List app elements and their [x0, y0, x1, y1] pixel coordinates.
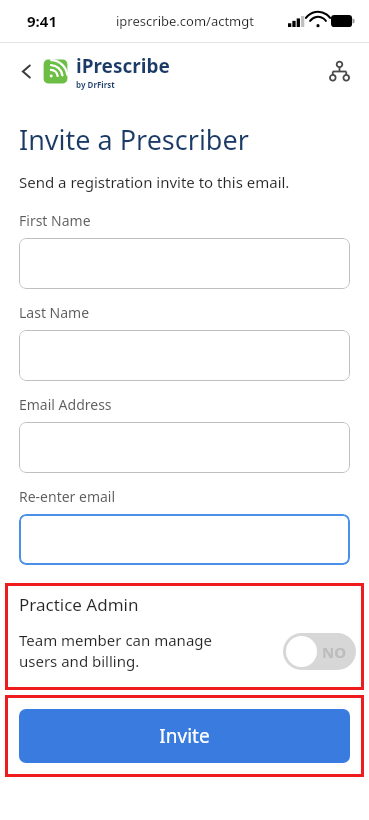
staticText: NO — [322, 642, 347, 662]
staticText: Invite — [159, 723, 210, 749]
staticText: Practice Admin — [19, 593, 139, 616]
staticText: by DrFirst — [76, 79, 115, 90]
button[interactable]: Practice admin toggle, off — [283, 633, 356, 670]
button[interactable] — [19, 514, 350, 565]
staticText: Last Name — [19, 303, 90, 322]
button[interactable]: Back — [8, 53, 44, 89]
staticText: iprescribe.com/actmgt — [116, 12, 254, 30]
staticText: First Name — [19, 211, 91, 230]
button[interactable] — [19, 238, 350, 289]
staticText: iPrescribe — [76, 53, 170, 79]
staticText: Invite a Prescriber — [19, 121, 249, 158]
staticText: Email Address — [19, 395, 112, 414]
staticText: Send a registration invite to this email… — [19, 172, 290, 192]
button[interactable]: Invite — [19, 709, 350, 763]
staticText: 9:41 — [27, 11, 57, 31]
staticText: Re-enter email — [19, 487, 116, 506]
button[interactable] — [19, 422, 350, 473]
button[interactable] — [19, 330, 350, 381]
staticText: Team member can manage users and billing… — [19, 630, 283, 672]
button[interactable]: Share — [321, 53, 357, 89]
